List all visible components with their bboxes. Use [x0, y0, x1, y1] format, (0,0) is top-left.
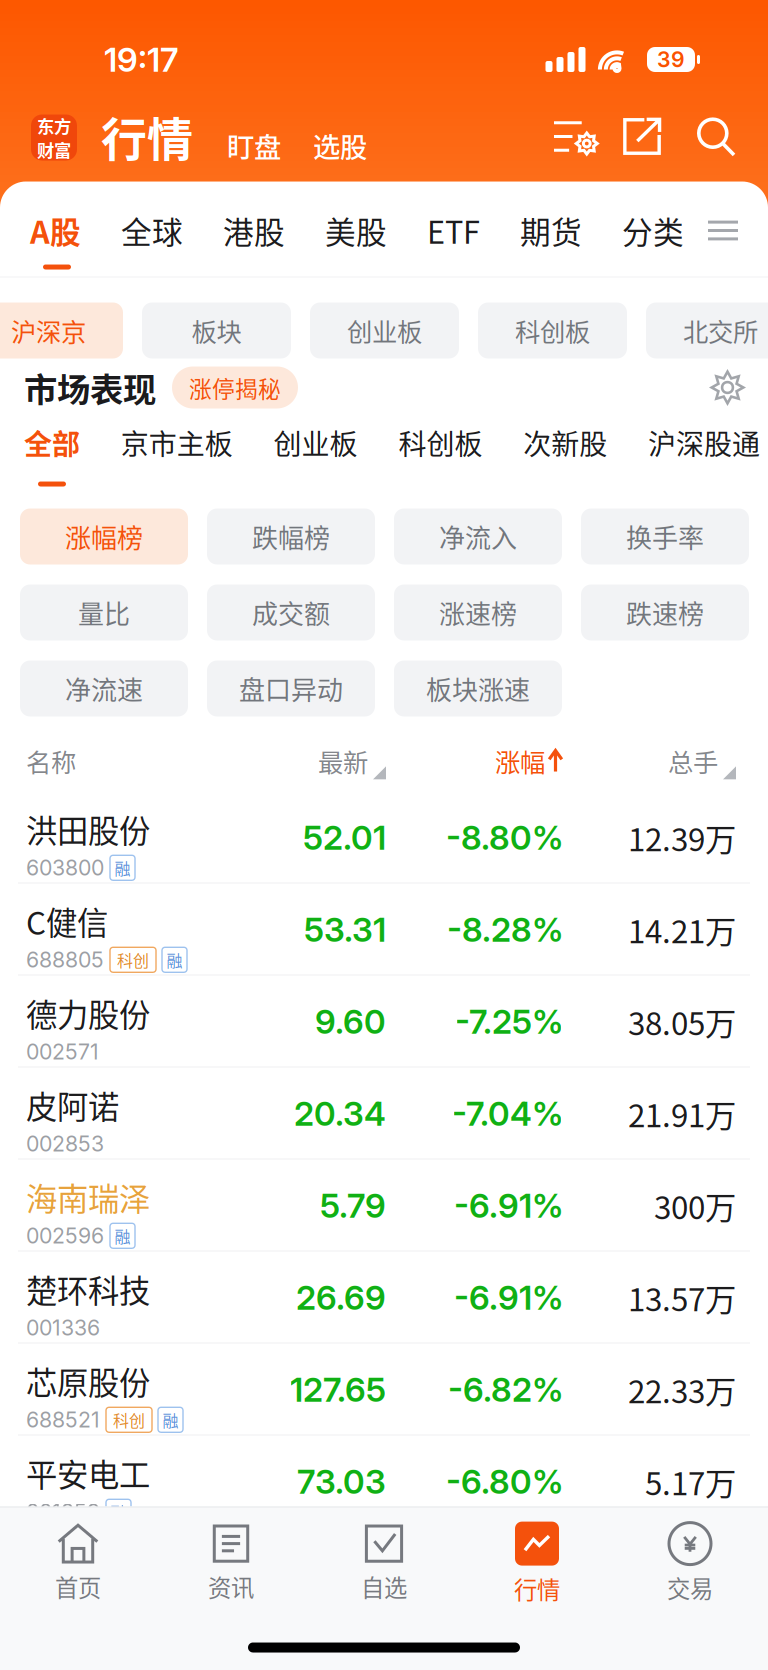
button[interactable]: 芯原股份: [0, 1343, 768, 1435]
button[interactable]: 分类: [622, 211, 684, 249]
staticText: 自选: [361, 1570, 407, 1603]
staticText: 融: [114, 856, 130, 879]
button[interactable]: 东方财富: [31, 114, 77, 160]
button[interactable]: 平安电工: [0, 1435, 768, 1527]
staticText: 板块: [191, 312, 241, 349]
staticText: 涨速榜: [439, 594, 517, 631]
staticText: 盯盘: [227, 126, 281, 165]
button[interactable]: 资讯: [154, 1509, 307, 1617]
staticText: 市场表现: [24, 363, 156, 412]
staticText: 板块涨速: [426, 670, 530, 707]
button[interactable]: 洪田股份: [0, 791, 768, 883]
button[interactable]: 全部: [24, 423, 80, 461]
button[interactable]: 盘口异动: [207, 660, 375, 716]
button[interactable]: 成交额: [207, 584, 375, 640]
staticText: C健信: [26, 898, 108, 944]
button[interactable]: 净流入: [394, 508, 562, 564]
button[interactable]: 全部板块: [708, 218, 738, 242]
button[interactable]: 楚环科技: [0, 1251, 768, 1343]
staticText: 美股: [325, 208, 387, 253]
button[interactable]: ETF: [427, 211, 480, 249]
button[interactable]: 首页: [1, 1509, 154, 1617]
button[interactable]: 科创板: [478, 302, 627, 358]
staticText: 最新: [318, 743, 368, 779]
button[interactable]: 皮阿诺: [0, 1067, 768, 1159]
button[interactable]: 总手: [563, 739, 736, 783]
button[interactable]: 涨幅: [386, 739, 563, 783]
button[interactable]: 板块涨速: [394, 660, 562, 716]
button[interactable]: 创业板: [310, 302, 459, 358]
staticText: 全部: [24, 422, 80, 463]
button[interactable]: 京市主板: [121, 423, 233, 461]
staticText: 海南瑞泽: [26, 1174, 150, 1220]
button[interactable]: 沪深股通: [648, 423, 760, 461]
button[interactable]: 板块: [142, 302, 291, 358]
button[interactable]: 最新: [240, 739, 386, 783]
button[interactable]: 次新股: [523, 423, 607, 461]
staticText: 净流入: [439, 518, 517, 555]
staticText: 21.91万: [628, 1091, 736, 1136]
button[interactable]: C健信: [0, 883, 768, 975]
staticText: 东方: [37, 113, 71, 138]
button[interactable]: 选股: [313, 130, 367, 160]
staticText: 19:17: [104, 39, 178, 80]
staticText: 平安电工: [26, 1450, 150, 1496]
button[interactable]: 科创板: [398, 423, 482, 461]
button[interactable]: A股: [30, 211, 81, 249]
button[interactable]: 沪深京: [0, 302, 123, 358]
button[interactable]: 涨速榜: [394, 584, 562, 640]
button[interactable]: 期货: [520, 211, 582, 249]
staticText: 净流速: [65, 670, 143, 707]
button[interactable]: 德力股份: [0, 975, 768, 1067]
staticText: -6.91%: [454, 1185, 563, 1226]
staticText: 交易: [667, 1571, 713, 1604]
staticText: 首页: [55, 1570, 101, 1603]
staticText: 芯原股份: [26, 1358, 150, 1404]
staticText: 沪深京: [11, 312, 86, 349]
staticText: 38.05万: [628, 999, 736, 1044]
button[interactable]: 行情: [460, 1509, 613, 1617]
staticText: 次新股: [523, 422, 607, 463]
staticText: 选股: [313, 126, 367, 165]
button[interactable]: 搜索: [690, 112, 742, 160]
button[interactable]: 自选: [307, 1509, 460, 1617]
button[interactable]: 全球: [121, 211, 183, 249]
staticText: 22.33万: [628, 1367, 736, 1412]
button[interactable]: 创业板: [274, 423, 358, 461]
staticText: 53.31: [304, 909, 386, 950]
staticText: -6.82%: [448, 1369, 563, 1410]
button[interactable]: 跌幅榜: [207, 508, 375, 564]
button[interactable]: 跌速榜: [581, 584, 749, 640]
staticText: 科创: [113, 1408, 145, 1431]
staticText: 20.34: [294, 1093, 386, 1134]
staticText: 楚环科技: [26, 1266, 150, 1312]
button[interactable]: 分享: [616, 112, 668, 160]
staticText: 13.57万: [628, 1275, 736, 1320]
staticText: 成交额: [252, 594, 330, 631]
button[interactable]: 涨幅榜: [20, 508, 188, 564]
staticText: -7.04%: [452, 1093, 563, 1134]
button[interactable]: 交易: [613, 1509, 766, 1617]
staticText: 14.21万: [628, 907, 736, 952]
button[interactable]: 北交所: [646, 302, 768, 358]
staticText: 全球: [121, 208, 183, 253]
staticText: 行情: [101, 103, 193, 169]
button[interactable]: 净流速: [20, 660, 188, 716]
button[interactable]: 美股: [325, 211, 387, 249]
staticText: -7.25%: [455, 1001, 563, 1042]
button[interactable]: 设置: [711, 371, 744, 404]
staticText: 26.69: [296, 1277, 386, 1318]
staticText: 688521: [26, 1407, 100, 1433]
button[interactable]: 量比: [20, 584, 188, 640]
staticText: 融: [110, 1500, 126, 1523]
staticText: 52.01: [303, 817, 386, 858]
button[interactable]: 港股: [223, 211, 285, 249]
staticText: 5.17万: [645, 1459, 736, 1504]
button[interactable]: 盯盘: [227, 130, 281, 160]
staticText: 港股: [223, 208, 285, 253]
button[interactable]: 换手率: [581, 508, 749, 564]
button[interactable]: 排序设置: [547, 112, 603, 160]
button[interactable]: 涨停揭秘: [172, 366, 298, 408]
button[interactable]: 海南瑞泽: [0, 1159, 768, 1251]
staticText: -8.80%: [446, 817, 563, 858]
